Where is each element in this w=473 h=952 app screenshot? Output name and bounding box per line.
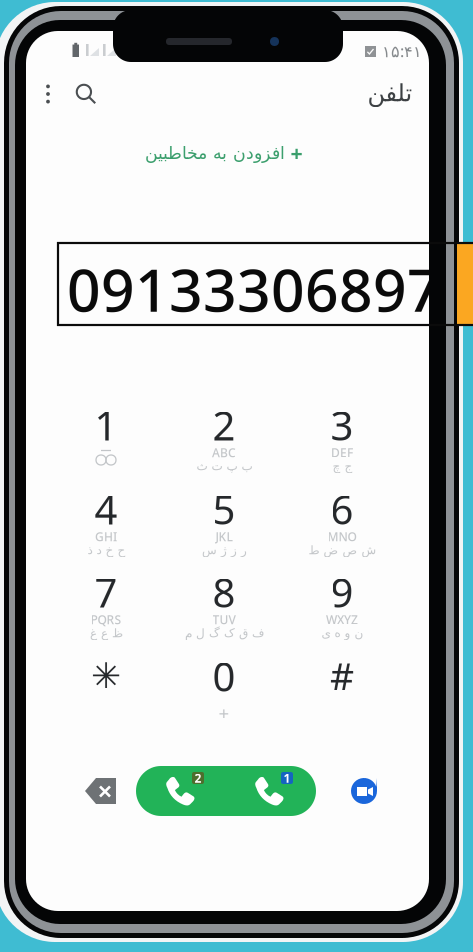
button[interactable]: Call xyxy=(136,766,316,816)
button[interactable]: More options xyxy=(31,75,65,113)
staticText: TUV xyxy=(212,611,235,627)
staticText: MNO xyxy=(327,528,356,544)
button[interactable]: 6 xyxy=(286,490,398,574)
staticText: DEF xyxy=(331,444,353,460)
staticText: 6 xyxy=(330,482,353,535)
staticText: 2 xyxy=(194,770,201,786)
staticText: 9 xyxy=(330,565,353,618)
staticText: ح خ د ذ xyxy=(87,543,125,557)
staticText: ج چ xyxy=(332,459,352,473)
staticText: # xyxy=(330,651,354,701)
button[interactable]: 5 xyxy=(168,490,280,574)
staticText: 09133306897 xyxy=(67,250,441,328)
staticText: + xyxy=(218,701,229,725)
button[interactable]: افزودن به مخاطبین xyxy=(22,138,425,168)
staticText: ABC xyxy=(212,444,236,460)
staticText: افزودن به مخاطبین xyxy=(144,143,284,163)
staticText: JKL xyxy=(215,528,232,544)
staticText: ✳ xyxy=(91,656,121,696)
staticText: 7 xyxy=(94,565,117,618)
staticText: ف ق ک گ ل م xyxy=(184,626,263,640)
button[interactable]: ✳ xyxy=(50,657,162,741)
button[interactable]: Backspace xyxy=(76,766,126,816)
staticText: 5 xyxy=(212,482,235,535)
staticText: 1 xyxy=(283,770,290,786)
staticText: PQRS xyxy=(90,611,121,627)
staticText: ش ص ض ط xyxy=(308,543,376,557)
staticText: 4 xyxy=(94,482,117,535)
staticText: تلفن xyxy=(367,79,412,107)
staticText: 1 xyxy=(94,398,117,451)
button[interactable]: 8 xyxy=(168,573,280,657)
button[interactable]: 2 xyxy=(168,406,280,490)
staticText: ن و ه ی xyxy=(321,626,363,640)
button[interactable]: Video call xyxy=(339,766,389,816)
staticText: ب پ ت ث xyxy=(196,459,252,473)
staticText: GHI xyxy=(95,528,117,544)
staticText: 0 xyxy=(212,649,235,702)
button[interactable]: 1 xyxy=(50,406,162,490)
staticText: 2 xyxy=(212,398,235,451)
staticText: 3 xyxy=(330,398,353,451)
button[interactable]: 9 xyxy=(286,573,398,657)
staticText: ۱۵:۴۱ xyxy=(382,40,422,62)
staticText: + xyxy=(290,139,302,167)
staticText: ر ز ژ س xyxy=(201,543,246,557)
button[interactable]: 0 xyxy=(168,657,280,741)
staticText: 8 xyxy=(212,565,235,618)
button[interactable]: 3 xyxy=(286,406,398,490)
button[interactable]: # xyxy=(286,657,398,741)
button[interactable]: Search xyxy=(69,75,103,113)
button[interactable]: 7 xyxy=(50,573,162,657)
staticText: WXYZ xyxy=(326,611,358,627)
staticText: ظ ع غ xyxy=(89,626,122,640)
button[interactable]: 4 xyxy=(50,490,162,574)
